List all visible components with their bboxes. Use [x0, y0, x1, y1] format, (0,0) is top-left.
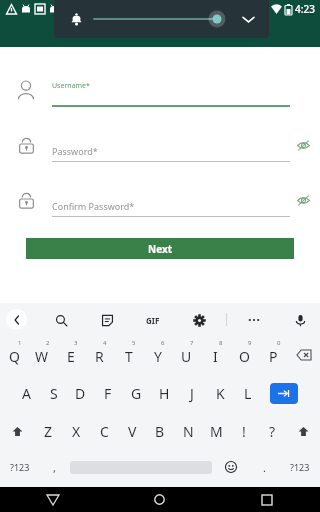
staticText: S: [50, 384, 58, 403]
button[interactable]: Backspace: [288, 336, 320, 374]
staticText: 7: [190, 339, 194, 347]
button[interactable]: 4: [85, 336, 114, 374]
button[interactable]: Z: [34, 412, 62, 450]
button[interactable]: Voice input: [288, 308, 312, 332]
staticText: 1: [18, 339, 22, 347]
staticText: 5: [132, 339, 136, 347]
button[interactable]: ?: [258, 412, 286, 450]
button[interactable]: 7: [172, 336, 201, 374]
staticText: R: [95, 347, 104, 366]
button[interactable]: Home: [106, 487, 213, 512]
button[interactable]: 9: [230, 336, 259, 374]
staticText: Username*: [52, 81, 90, 91]
button[interactable]: Back: [0, 487, 106, 512]
staticText: K: [216, 384, 225, 403]
button[interactable]: Shift: [0, 412, 34, 450]
staticText: Password*: [52, 145, 98, 157]
button[interactable]: 1: [0, 336, 28, 374]
staticText: X: [72, 422, 81, 441]
button[interactable]: K: [206, 374, 234, 412]
staticText: U: [181, 347, 192, 366]
staticText: F: [104, 384, 112, 403]
button[interactable]: 5: [114, 336, 143, 374]
staticText: L: [244, 384, 252, 403]
button[interactable]: S: [40, 374, 67, 412]
button[interactable]: Username*: [0, 73, 320, 107]
staticText: 0: [277, 339, 281, 347]
button[interactable]: 3: [56, 336, 85, 374]
button[interactable]: H: [150, 374, 178, 412]
staticText: W: [35, 347, 49, 366]
staticText: P: [269, 347, 278, 366]
button[interactable]: V: [118, 412, 146, 450]
button[interactable]: ,: [39, 450, 70, 484]
staticText: ?: [269, 422, 276, 441]
button[interactable]: .: [249, 450, 280, 484]
staticText: B: [155, 422, 165, 441]
staticText: ,: [53, 460, 56, 475]
button[interactable]: Settings: [187, 308, 211, 332]
button[interactable]: 0: [259, 336, 288, 374]
button[interactable]: Stickers: [95, 308, 119, 332]
button[interactable]: GIF: [141, 308, 165, 332]
staticText: Confirm Password*: [52, 200, 135, 212]
button[interactable]: Password*: [0, 128, 320, 162]
button[interactable]: ?123: [280, 450, 320, 484]
button[interactable]: 2: [28, 336, 56, 374]
staticText: M: [210, 422, 223, 441]
button[interactable]: Emoji: [212, 450, 249, 484]
button[interactable]: Next field: [270, 383, 298, 404]
staticText: 6: [161, 339, 165, 347]
staticText: 8: [219, 339, 223, 347]
button[interactable]: F: [94, 374, 122, 412]
button[interactable]: Search: [49, 308, 73, 332]
staticText: GIF: [146, 315, 160, 326]
staticText: A: [22, 384, 31, 403]
button[interactable]: Back: [6, 309, 27, 330]
staticText: 4: [103, 339, 107, 347]
staticText: V: [128, 422, 137, 441]
staticText: ?123: [290, 461, 310, 473]
button[interactable]: Ring volume: [64, 7, 88, 31]
button[interactable]: 6: [143, 336, 172, 374]
button[interactable]: C: [90, 412, 118, 450]
button[interactable]: ?123: [0, 450, 39, 484]
staticText: !: [242, 422, 246, 441]
button[interactable]: Show password: [292, 189, 314, 211]
button[interactable]: Expand volume: [237, 8, 259, 30]
staticText: C: [100, 422, 109, 441]
button[interactable]: G: [122, 374, 150, 412]
staticText: I: [213, 347, 218, 366]
button[interactable]: D: [67, 374, 94, 412]
staticText: D: [75, 384, 86, 403]
button[interactable]: More: [242, 308, 266, 332]
button[interactable]: M: [202, 412, 230, 450]
button[interactable]: Show password: [292, 134, 314, 156]
button[interactable]: Confirm Password*: [0, 183, 320, 217]
button[interactable]: X: [62, 412, 90, 450]
staticText: Z: [44, 422, 53, 441]
staticText: Next: [148, 242, 173, 256]
button[interactable]: L: [234, 374, 262, 412]
button[interactable]: Recents: [213, 487, 320, 512]
staticText: ?123: [10, 461, 30, 473]
staticText: 3: [74, 339, 78, 347]
staticText: 4:23: [295, 2, 315, 16]
staticText: H: [159, 384, 170, 403]
staticText: J: [190, 384, 194, 403]
staticText: T: [125, 347, 133, 366]
staticText: O: [239, 347, 250, 366]
button[interactable]: 8: [201, 336, 230, 374]
button[interactable]: Next: [26, 238, 294, 259]
button[interactable]: N: [174, 412, 202, 450]
button[interactable]: J: [178, 374, 206, 412]
button[interactable]: B: [146, 412, 174, 450]
button[interactable]: A: [13, 374, 40, 412]
staticText: .: [263, 460, 266, 475]
staticText: Y: [154, 347, 162, 366]
button[interactable]: Shift: [286, 412, 320, 450]
staticText: N: [183, 422, 194, 441]
staticText: Q: [9, 347, 20, 366]
button[interactable]: !: [230, 412, 258, 450]
